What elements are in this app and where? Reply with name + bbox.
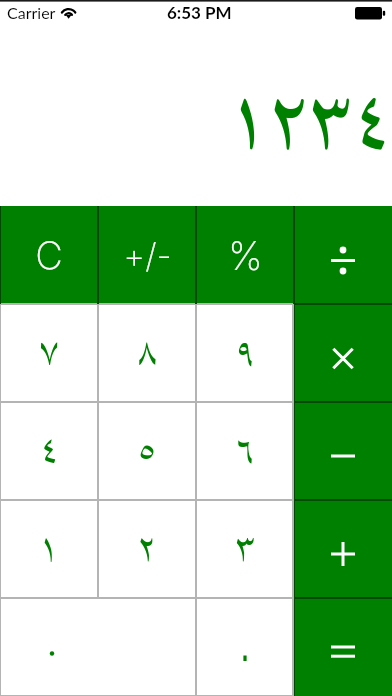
staticText: ٦ bbox=[234, 409, 256, 487]
button[interactable]: Decimal point bbox=[196, 598, 294, 696]
button[interactable]: Zero bbox=[0, 598, 196, 696]
button[interactable]: Multiply bbox=[294, 304, 392, 402]
staticText: ٢ bbox=[136, 507, 158, 585]
button[interactable]: Divide bbox=[294, 206, 392, 304]
button[interactable]: ١ bbox=[0, 500, 98, 598]
button[interactable]: Equals bbox=[294, 598, 392, 696]
button[interactable]: Plus bbox=[294, 500, 392, 598]
button[interactable]: Minus bbox=[294, 402, 392, 500]
staticText: ٨ bbox=[136, 311, 158, 389]
button[interactable]: ٥ bbox=[98, 402, 196, 500]
button[interactable]: ٨ bbox=[98, 304, 196, 402]
button[interactable]: Clear bbox=[0, 206, 98, 304]
button[interactable]: ٤ bbox=[0, 402, 98, 500]
button[interactable]: ٦ bbox=[196, 402, 294, 500]
button[interactable]: Percent bbox=[196, 206, 294, 304]
button[interactable]: ٧ bbox=[0, 304, 98, 402]
staticText: ٩ bbox=[234, 311, 256, 389]
button[interactable]: Plus minus bbox=[98, 206, 196, 304]
staticText: ٧ bbox=[38, 311, 60, 389]
staticText: % bbox=[228, 232, 263, 279]
staticText: Carrier bbox=[7, 3, 56, 22]
staticText: 6:53 PM bbox=[167, 2, 232, 22]
button[interactable]: ٣ bbox=[196, 500, 294, 598]
button[interactable]: ٢ bbox=[98, 500, 196, 598]
button[interactable]: ٩ bbox=[196, 304, 294, 402]
staticText: ٣ bbox=[234, 507, 256, 585]
staticText: ٤ bbox=[38, 409, 60, 487]
staticText: ١ bbox=[38, 507, 60, 585]
staticText: ١٢٣٤ bbox=[224, 52, 392, 193]
staticText: ٥ bbox=[136, 409, 158, 487]
staticText: +/- bbox=[123, 235, 172, 276]
staticText: C bbox=[35, 232, 63, 278]
